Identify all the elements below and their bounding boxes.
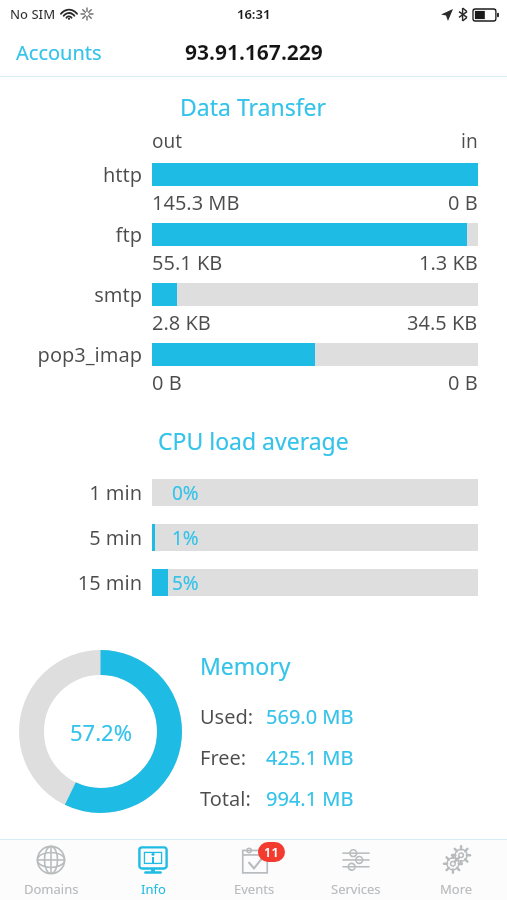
- staticText: 1.3 KB: [419, 249, 478, 276]
- staticText: 1 min: [0, 479, 142, 506]
- staticText: Info: [141, 880, 166, 898]
- staticText: smtp: [0, 281, 142, 308]
- staticText: 5 min: [0, 524, 142, 551]
- button[interactable]: Info: [102, 840, 204, 900]
- other: Events: [238, 845, 272, 879]
- staticText: ftp: [0, 221, 142, 248]
- staticText: 569.0 MB: [266, 703, 354, 730]
- staticText: Events: [234, 880, 275, 898]
- staticText: Total:: [200, 785, 251, 812]
- staticText: 1%: [172, 525, 199, 551]
- staticText: Accounts: [16, 39, 102, 66]
- staticText: Domains: [24, 880, 79, 898]
- staticText: 0 B: [152, 369, 182, 396]
- staticText: out: [152, 128, 183, 154]
- staticText: 16:31: [237, 5, 271, 23]
- staticText: 55.1 KB: [152, 249, 223, 276]
- button[interactable]: Domains: [0, 840, 102, 900]
- staticText: More: [440, 880, 473, 898]
- other: More: [440, 845, 474, 879]
- staticText: 0 B: [448, 189, 478, 216]
- other: Services: [339, 845, 373, 879]
- staticText: 11: [264, 843, 279, 861]
- staticText: pop3_imap: [0, 341, 142, 368]
- staticText: 0 B: [448, 369, 478, 396]
- staticText: Services: [331, 880, 381, 898]
- staticText: 5%: [172, 570, 199, 596]
- staticText: 93.91.167.229: [185, 38, 323, 67]
- button[interactable]: Accounts: [0, 31, 118, 74]
- staticText: in: [461, 128, 478, 154]
- staticText: Data Transfer: [180, 91, 327, 122]
- staticText: CPU load average: [158, 425, 349, 456]
- staticText: http: [0, 161, 142, 188]
- button[interactable]: Events: [204, 840, 305, 900]
- other: Domains: [34, 845, 68, 879]
- staticText: 145.3 MB: [152, 189, 240, 216]
- staticText: 15 min: [0, 569, 142, 596]
- button[interactable]: Services: [305, 840, 406, 900]
- staticText: 57.2%: [70, 717, 132, 747]
- staticText: 0%: [172, 480, 199, 506]
- staticText: 994.1 MB: [266, 785, 354, 812]
- staticText: 425.1 MB: [266, 744, 354, 771]
- staticText: 2.8 KB: [152, 309, 211, 336]
- button[interactable]: More: [406, 840, 507, 900]
- staticText: 34.5 KB: [407, 309, 478, 336]
- staticText: Used:: [200, 703, 254, 730]
- other: Info: [136, 845, 170, 879]
- staticText: Free:: [200, 744, 247, 771]
- staticText: Memory: [200, 650, 291, 681]
- staticText: No SIM: [10, 5, 56, 23]
